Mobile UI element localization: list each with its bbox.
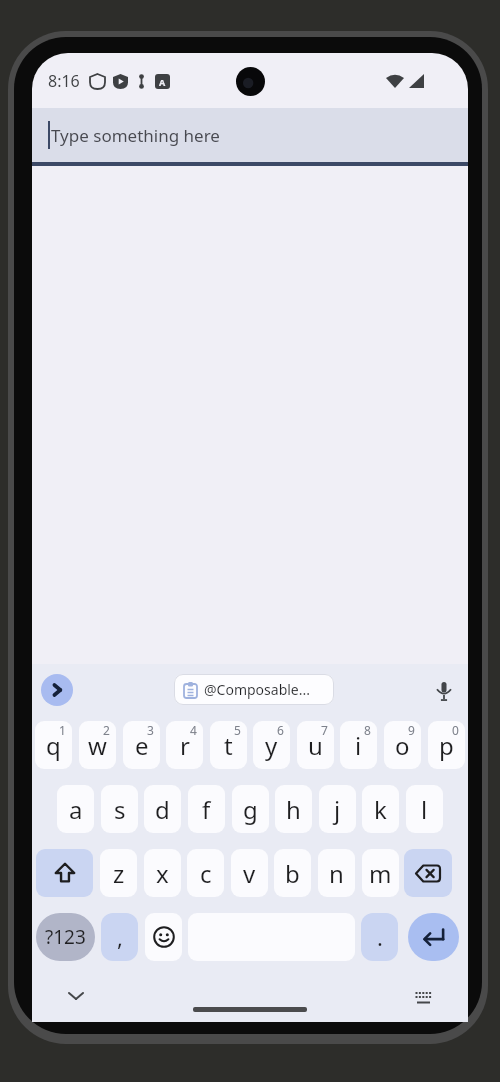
staticText: v xyxy=(243,857,256,890)
button[interactable]: z xyxy=(100,849,137,897)
staticText: q xyxy=(46,729,61,762)
staticText: g xyxy=(243,793,258,826)
staticText: 5 xyxy=(234,722,241,738)
button[interactable]: d xyxy=(144,785,181,833)
staticText: 4 xyxy=(190,722,197,738)
button[interactable]: y xyxy=(253,721,290,769)
button[interactable]: b xyxy=(274,849,311,897)
staticText: 3 xyxy=(147,722,154,738)
button[interactable] xyxy=(415,992,432,1004)
button[interactable]: ?123 xyxy=(36,913,95,961)
staticText: s xyxy=(114,793,126,826)
staticText: 0 xyxy=(452,722,459,738)
staticText: 9 xyxy=(408,722,415,738)
staticText: , xyxy=(117,922,123,952)
staticText: 2 xyxy=(103,722,110,738)
staticText: a xyxy=(69,793,83,826)
button[interactable]: q xyxy=(35,721,72,769)
staticText: x xyxy=(156,857,169,890)
button[interactable]: j xyxy=(319,785,356,833)
staticText: Type something here xyxy=(51,124,220,147)
button[interactable]: e xyxy=(123,721,160,769)
button[interactable] xyxy=(41,674,73,706)
button[interactable] xyxy=(437,682,451,701)
button[interactable]: t xyxy=(210,721,247,769)
button[interactable] xyxy=(36,849,93,897)
button[interactable]: g xyxy=(232,785,269,833)
staticText: u xyxy=(308,729,323,762)
staticText: b xyxy=(285,857,300,890)
staticText: z xyxy=(113,857,125,890)
staticText: t xyxy=(224,729,233,762)
staticText: y xyxy=(265,729,278,762)
staticText: @Composable... xyxy=(204,680,311,699)
button[interactable] xyxy=(404,849,452,897)
staticText: . xyxy=(377,922,383,952)
staticText: m xyxy=(369,857,392,890)
staticText: c xyxy=(200,857,212,890)
staticText: l xyxy=(421,793,428,826)
staticText: d xyxy=(155,793,170,826)
button[interactable]: x xyxy=(144,849,181,897)
button[interactable]: @Composable... xyxy=(174,674,334,705)
button[interactable]: u xyxy=(297,721,334,769)
staticText: A xyxy=(159,76,166,88)
button[interactable]: i xyxy=(340,721,377,769)
staticText: 1 xyxy=(59,722,66,738)
button[interactable]: Type something here xyxy=(32,108,468,166)
button[interactable]: n xyxy=(318,849,355,897)
button[interactable]: l xyxy=(406,785,443,833)
button[interactable]: r xyxy=(166,721,203,769)
button[interactable]: k xyxy=(362,785,399,833)
button[interactable] xyxy=(408,913,459,961)
button[interactable] xyxy=(145,913,182,961)
staticText: ?123 xyxy=(45,924,86,950)
button[interactable]: m xyxy=(362,849,399,897)
button[interactable] xyxy=(68,991,84,1001)
staticText: 8 xyxy=(364,722,371,738)
staticText: r xyxy=(180,729,190,762)
staticText: n xyxy=(329,857,344,890)
button[interactable]: f xyxy=(188,785,225,833)
button[interactable]: h xyxy=(275,785,312,833)
button[interactable]: w xyxy=(79,721,116,769)
staticText: o xyxy=(395,729,410,762)
button[interactable]: , xyxy=(101,913,138,961)
staticText: f xyxy=(202,793,211,826)
staticText: h xyxy=(286,793,301,826)
staticText: 7 xyxy=(321,722,328,738)
staticText: i xyxy=(355,729,362,762)
staticText: w xyxy=(88,729,107,762)
button[interactable]: . xyxy=(361,913,398,961)
button[interactable]: a xyxy=(57,785,94,833)
staticText: p xyxy=(439,729,454,762)
button[interactable]: p xyxy=(428,721,465,769)
button[interactable]: c xyxy=(187,849,224,897)
button[interactable]: o xyxy=(384,721,421,769)
staticText: 6 xyxy=(277,722,284,738)
staticText: k xyxy=(374,793,387,826)
staticText: e xyxy=(135,729,149,762)
staticText: j xyxy=(334,793,341,826)
staticText: 8:16 xyxy=(48,70,80,92)
button[interactable]: s xyxy=(101,785,138,833)
button[interactable]: v xyxy=(231,849,268,897)
